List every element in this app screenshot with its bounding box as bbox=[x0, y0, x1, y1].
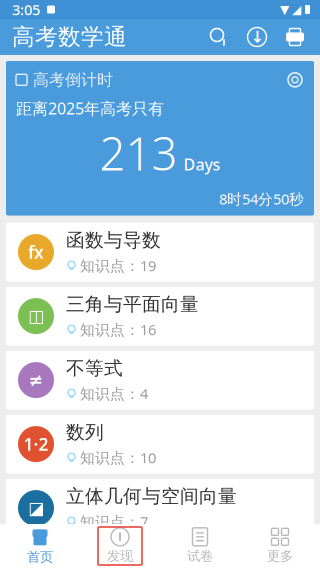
staticText: 知识点：4 bbox=[80, 384, 148, 403]
button[interactable]: 1·2 bbox=[6, 415, 314, 474]
staticText: 不等式 bbox=[66, 357, 123, 380]
staticText: 1·2 bbox=[23, 433, 48, 456]
staticText: ◪ bbox=[28, 498, 44, 518]
staticText: 距离2025年高考只有 bbox=[16, 98, 164, 119]
staticText: 平面解析几何 bbox=[66, 549, 180, 568]
staticText: 3:05 bbox=[12, 0, 40, 19]
button[interactable]: ≠ bbox=[6, 351, 314, 410]
button[interactable]: ◫ bbox=[6, 287, 314, 346]
staticText: 知识点：19 bbox=[80, 256, 156, 275]
staticText: ◢ bbox=[292, 3, 301, 16]
button[interactable]: 发现 bbox=[80, 524, 160, 568]
staticText: 知识点：7 bbox=[80, 512, 148, 531]
button[interactable]: 搜索 bbox=[200, 18, 238, 56]
button[interactable]: 试卷 bbox=[160, 524, 240, 568]
button[interactable]: 首页 bbox=[0, 524, 80, 568]
staticText: 发现 bbox=[107, 548, 133, 564]
staticText: 更多 bbox=[267, 548, 293, 564]
staticText: 首页 bbox=[27, 549, 53, 565]
staticText: 高考倒计时 bbox=[33, 70, 113, 90]
button[interactable]: 打印 bbox=[276, 18, 314, 56]
staticText: ▼ bbox=[280, 3, 289, 16]
button[interactable]: 高考倒计时 bbox=[0, 55, 320, 223]
button[interactable]: 下载 bbox=[238, 18, 276, 56]
staticText: 知识点：16 bbox=[80, 320, 156, 339]
staticText: 213 bbox=[99, 123, 177, 183]
staticText: ↓ bbox=[250, 28, 263, 46]
staticText: 立体几何与空间向量 bbox=[66, 485, 237, 508]
button[interactable]: fx bbox=[6, 223, 314, 282]
staticText: 三角与平面向量 bbox=[66, 293, 199, 316]
staticText: ◫ bbox=[28, 306, 44, 326]
staticText: fx bbox=[28, 241, 44, 264]
staticText: 试卷 bbox=[187, 548, 213, 564]
staticText: Days bbox=[183, 154, 220, 175]
staticText: 知识点：10 bbox=[80, 448, 156, 467]
staticText: ◠ bbox=[29, 562, 42, 568]
button[interactable]: ◪ bbox=[6, 479, 314, 538]
staticText: 数列 bbox=[66, 421, 104, 444]
button[interactable]: 更多 bbox=[240, 524, 320, 568]
staticText: 高考数学通 bbox=[12, 23, 127, 51]
staticText: ≠ bbox=[28, 370, 43, 390]
staticText: 8时54分50秒 bbox=[219, 189, 304, 209]
staticText: 函数与导数 bbox=[66, 229, 161, 252]
button[interactable]: ◠ bbox=[6, 543, 314, 568]
